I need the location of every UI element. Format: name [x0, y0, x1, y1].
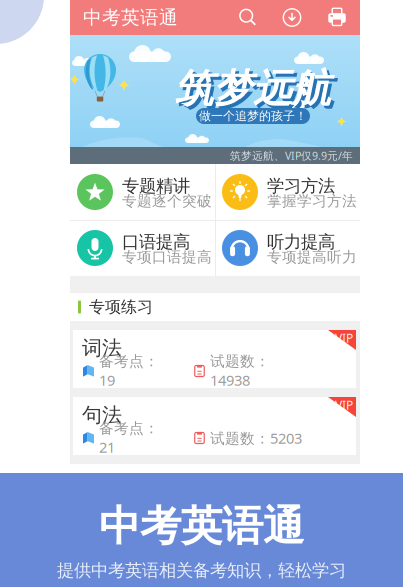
staticText: 听力提高	[267, 231, 335, 253]
staticText: 提供中考英语相关备考知识，轻松学习	[57, 560, 346, 581]
staticText: 句法	[82, 403, 122, 427]
button[interactable]: Print	[317, 0, 357, 35]
staticText: 词法	[82, 336, 122, 360]
staticText: 专题逐个突破	[122, 192, 212, 210]
staticText: 掌握学习方法	[267, 192, 357, 210]
button[interactable]: Download	[272, 0, 312, 35]
staticText: 专项练习	[89, 297, 153, 317]
staticText: 筑梦远航、VIP仅9.9元/年	[230, 148, 353, 163]
button[interactable]: 专题精讲	[70, 164, 215, 220]
staticText: 口语提高	[122, 231, 190, 253]
button[interactable]: 学习方法	[215, 164, 360, 220]
staticText: 中考英语通	[99, 501, 304, 552]
staticText: 备考点：19	[99, 352, 159, 390]
staticText: 试题数：5203	[210, 428, 302, 448]
staticText: 专项提高听力	[267, 248, 357, 266]
staticText: 学习方法	[267, 175, 335, 197]
staticText: 备考点：21	[99, 419, 159, 457]
button[interactable]: 听力提高	[215, 220, 360, 276]
staticText: 筑梦远航	[175, 65, 331, 112]
staticText: VIP	[335, 330, 353, 346]
button[interactable]: Search	[228, 0, 268, 35]
staticText: 专题精讲	[122, 175, 190, 197]
button[interactable]: VIP	[70, 330, 360, 388]
button[interactable]: VIP	[70, 397, 360, 455]
staticText: 中考英语通	[83, 6, 178, 29]
staticText: 试题数：14938	[210, 352, 270, 390]
staticText: VIP	[335, 397, 353, 413]
button[interactable]: 口语提高	[70, 220, 215, 276]
staticText: 筑梦远航	[178, 68, 334, 115]
staticText: 专项口语提高	[122, 248, 212, 266]
staticText: 做一个追梦的孩子！	[199, 109, 307, 123]
